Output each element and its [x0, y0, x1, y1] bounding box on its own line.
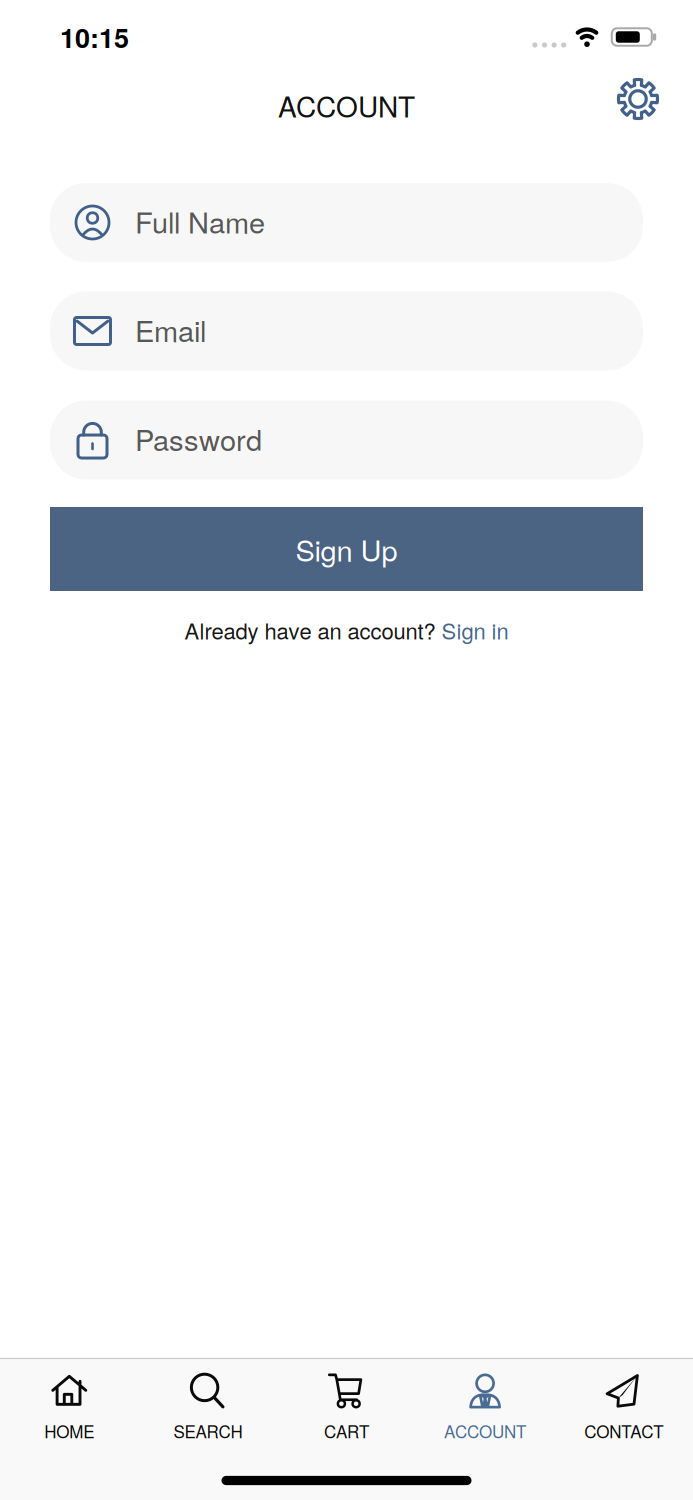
staticText: Sign in [441, 614, 508, 646]
staticText: 10:15 [60, 18, 129, 56]
staticText: Full Name [135, 200, 265, 242]
staticText: Password [135, 418, 262, 459]
staticText: SEARCH [173, 1419, 242, 1443]
staticText: CONTACT [584, 1419, 663, 1443]
button[interactable]: Sign Up [50, 507, 643, 591]
staticText: Email [135, 309, 206, 350]
button[interactable]: CART [277, 1368, 415, 1448]
button[interactable]: SEARCH [139, 1368, 277, 1448]
staticText: ACCOUNT [278, 85, 415, 126]
staticText: Sign Up [295, 528, 397, 570]
button[interactable]: HOME [0, 1368, 138, 1448]
button[interactable]: Password [50, 400, 643, 479]
staticText: Already have an account? [184, 614, 435, 646]
staticText: ACCOUNT [444, 1419, 526, 1443]
button[interactable]: ACCOUNT [416, 1368, 554, 1448]
button[interactable]: Email [50, 291, 643, 370]
staticText: HOME [44, 1419, 94, 1443]
button[interactable]: CONTACT [555, 1368, 693, 1448]
button[interactable]: Sign in [441, 614, 508, 646]
button[interactable]: Settings [616, 77, 660, 121]
button[interactable]: Full Name [50, 183, 643, 262]
staticText: CART [324, 1419, 369, 1443]
